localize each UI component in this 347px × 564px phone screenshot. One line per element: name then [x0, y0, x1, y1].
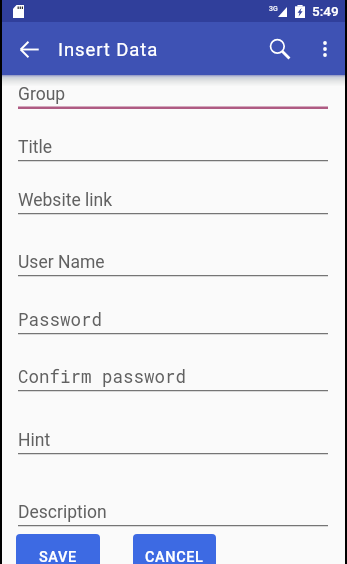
- staticText: User Name: [18, 252, 105, 273]
- button[interactable]: Back: [0, 25, 48, 73]
- button[interactable]: CANCEL: [133, 534, 216, 564]
- button[interactable]: Description: [0, 455, 347, 527]
- button[interactable]: Website link: [0, 162, 347, 215]
- staticText: SAVE: [39, 549, 77, 564]
- staticText: Insert Data: [58, 39, 159, 61]
- button[interactable]: User Name: [0, 215, 347, 277]
- staticText: Group: [18, 84, 66, 105]
- button[interactable]: Search: [255, 25, 303, 73]
- staticText: Website link: [18, 190, 113, 211]
- staticText: Password: [18, 308, 103, 331]
- button[interactable]: Confirm password: [0, 335, 347, 392]
- button[interactable]: Group: [0, 75, 347, 109]
- staticText: Title: [18, 137, 52, 158]
- staticText: Confirm password: [18, 365, 187, 388]
- button[interactable]: Password: [0, 277, 347, 335]
- button[interactable]: Hint: [0, 392, 347, 455]
- staticText: Description: [18, 502, 107, 523]
- button[interactable]: More options: [303, 27, 347, 71]
- button[interactable]: Title: [0, 109, 347, 162]
- staticText: 3G: [269, 5, 278, 13]
- staticText: CANCEL: [145, 549, 204, 564]
- staticText: Hint: [18, 430, 51, 451]
- staticText: 5:49: [312, 3, 339, 19]
- button[interactable]: SAVE: [16, 534, 100, 564]
